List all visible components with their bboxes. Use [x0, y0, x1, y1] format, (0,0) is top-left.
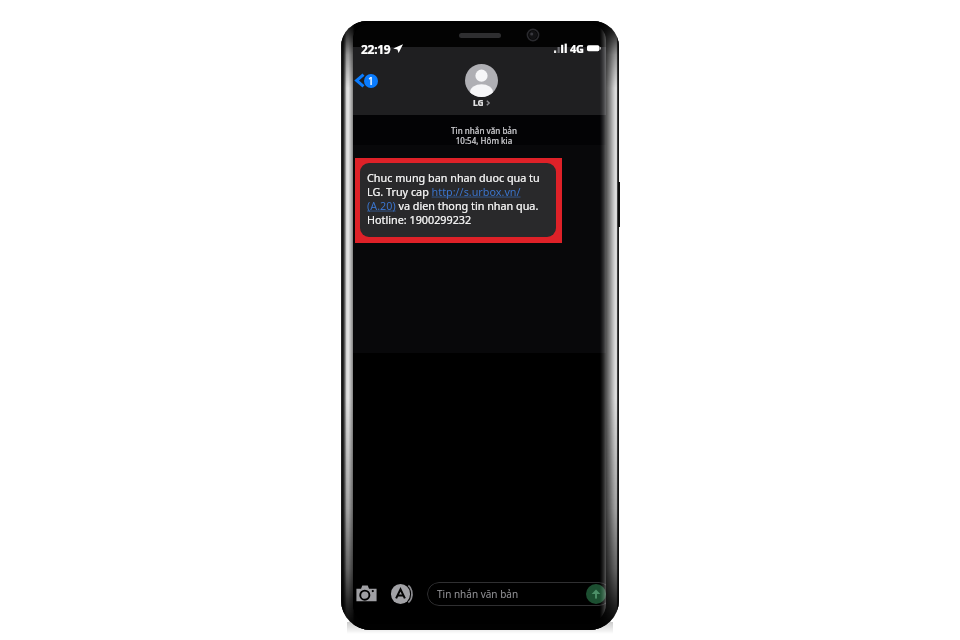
- button[interactable]: Send: [586, 584, 606, 604]
- staticText: Tin nhắn văn bản: [437, 587, 519, 601]
- button[interactable]: Chuc mung ban nhan duoc qua tu LG. Truy …: [360, 163, 556, 237]
- staticText: Tin nhắn văn bản 10:54, Hôm kia: [451, 125, 517, 146]
- button[interactable]: Apps: [388, 582, 414, 606]
- button[interactable]: Back: [353, 71, 380, 90]
- staticText: LG: [473, 97, 484, 109]
- staticText: 22:19: [361, 41, 391, 55]
- staticText: 1: [368, 74, 374, 88]
- button[interactable]: LG: [465, 64, 498, 109]
- staticText: Chuc mung ban nhan duoc qua tu LG. Truy …: [367, 170, 540, 227]
- button[interactable]: Tin nhắn văn bản: [427, 582, 606, 606]
- staticText: 4G: [570, 41, 584, 55]
- button[interactable]: Camera: [354, 582, 379, 604]
